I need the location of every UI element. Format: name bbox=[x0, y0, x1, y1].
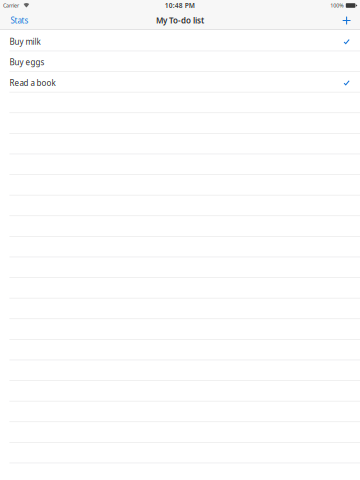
staticText: Carrier bbox=[3, 2, 19, 9]
staticText: 10:48 PM bbox=[165, 1, 195, 10]
staticText: Buy milk bbox=[10, 36, 41, 47]
staticText: Stats bbox=[11, 15, 29, 26]
button[interactable]: Buy eggs bbox=[0, 51, 360, 71]
staticText: My To-do list bbox=[156, 15, 204, 26]
button[interactable]: Buy milk bbox=[0, 30, 360, 51]
button[interactable]: Stats bbox=[0, 11, 39, 30]
staticText: Buy eggs bbox=[10, 57, 45, 67]
staticText: 100% bbox=[330, 2, 343, 9]
staticText: Read a book bbox=[10, 77, 56, 88]
button[interactable]: Read a book bbox=[0, 71, 360, 92]
button[interactable]: Add item bbox=[334, 11, 360, 29]
